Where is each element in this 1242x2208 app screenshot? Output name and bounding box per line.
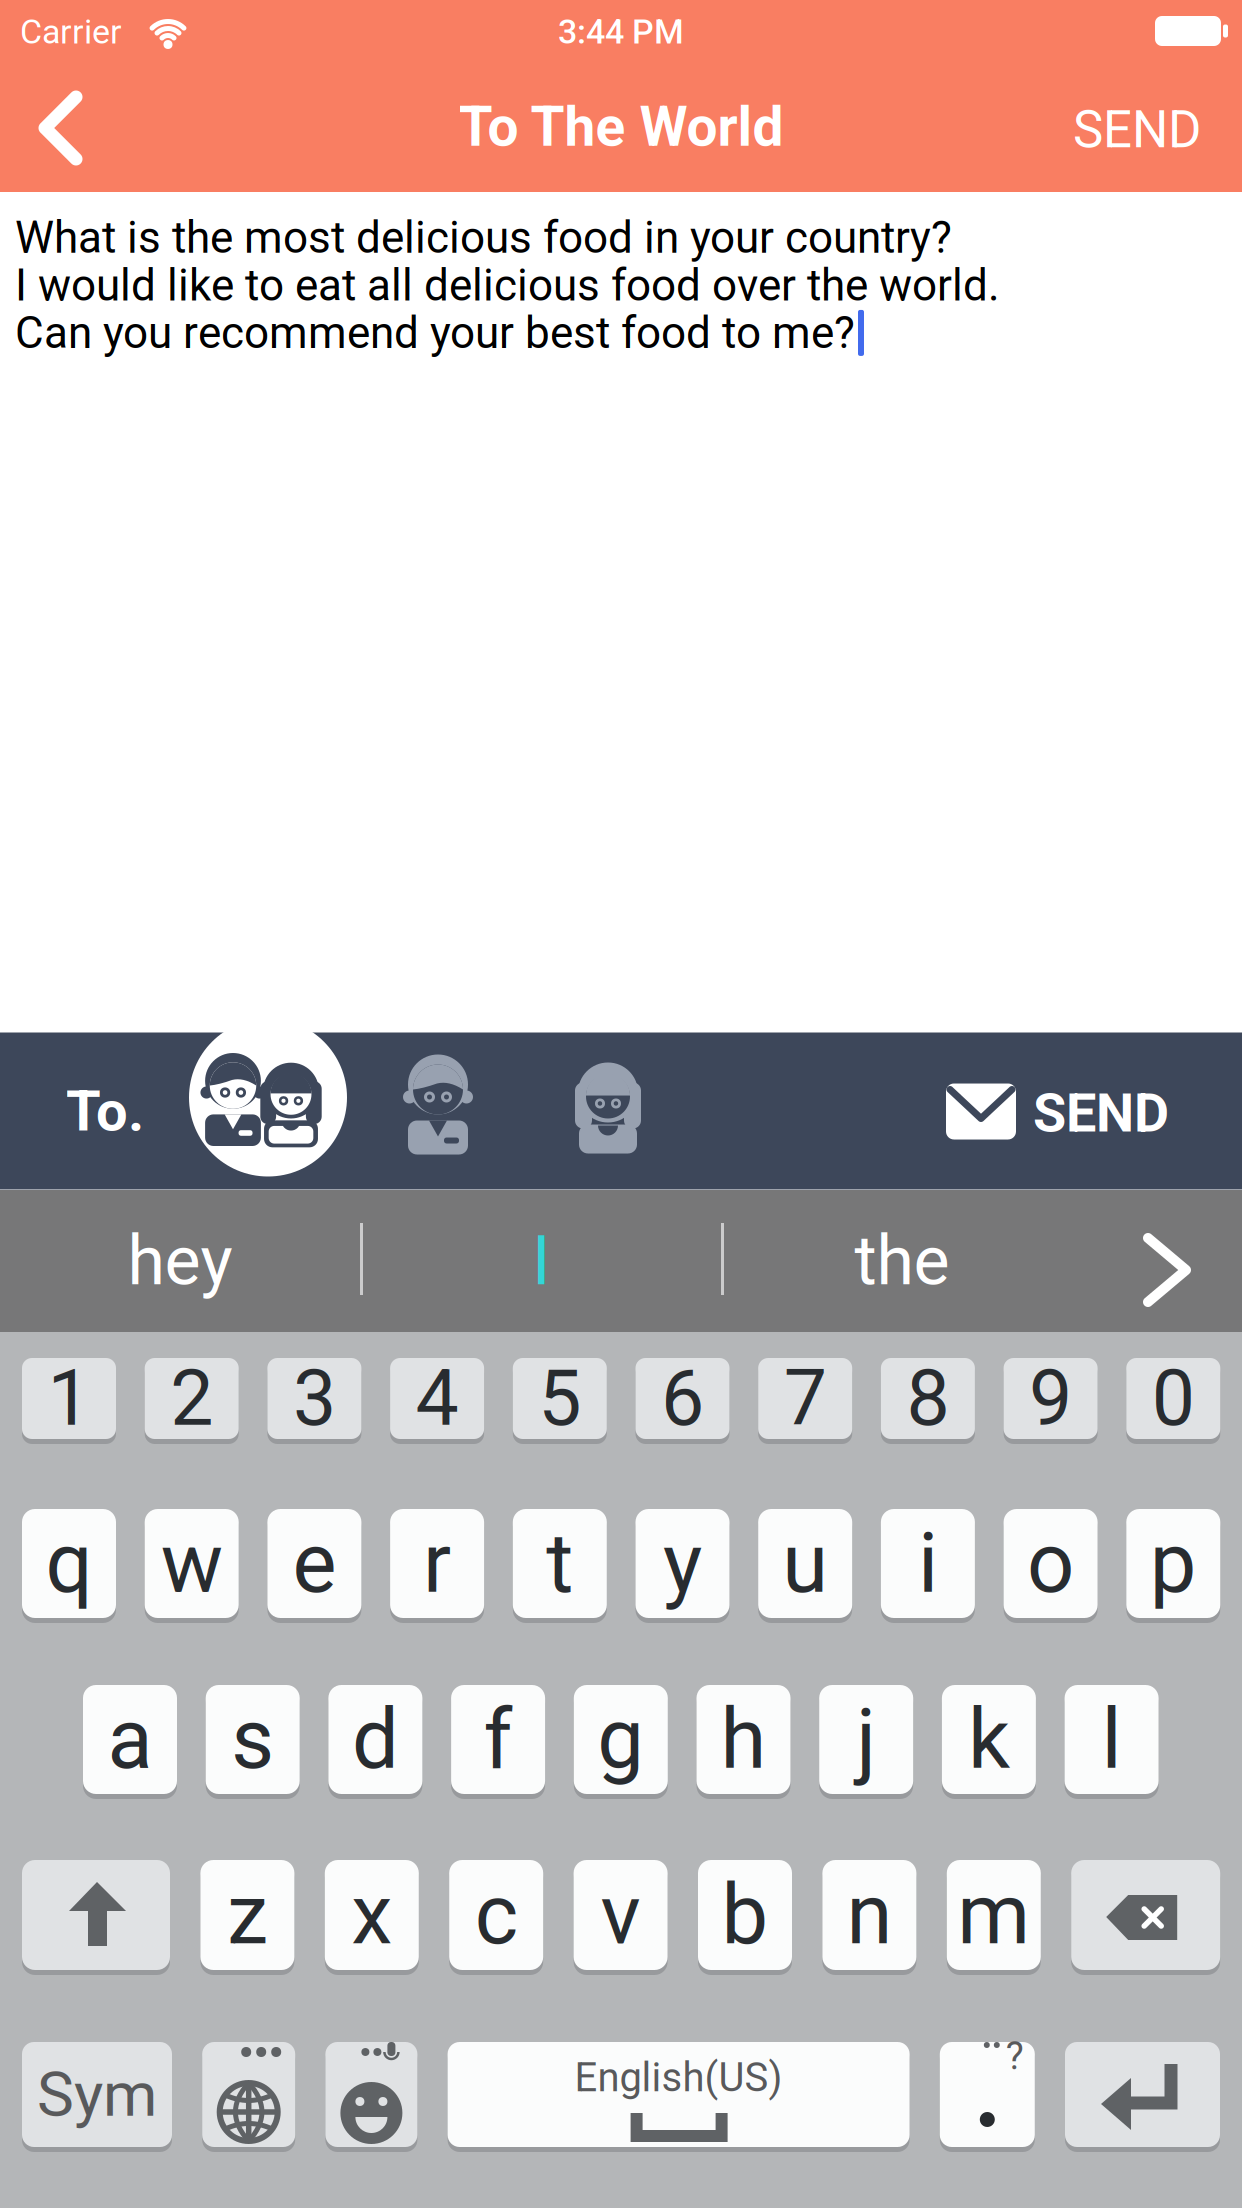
staticText: 9 xyxy=(1029,1353,1072,1444)
staticText: 2 xyxy=(170,1353,213,1444)
staticText: hey xyxy=(127,1221,232,1301)
staticText: j xyxy=(856,1691,876,1788)
staticText: s xyxy=(231,1691,274,1788)
staticText: m xyxy=(957,1866,1030,1964)
staticText: 6 xyxy=(661,1353,704,1444)
staticText: 5 xyxy=(538,1353,581,1444)
staticText: b xyxy=(721,1866,768,1964)
staticText: k xyxy=(968,1691,1010,1788)
staticText: d xyxy=(352,1691,399,1788)
staticText: What is the most delicious food in your … xyxy=(15,212,952,264)
staticText: English(US) xyxy=(575,2054,783,2101)
staticText: l xyxy=(1102,1691,1122,1788)
staticText: 4 xyxy=(416,1353,459,1444)
staticText: g xyxy=(597,1691,644,1788)
staticText: I would like to eat all delicious food o… xyxy=(15,260,1000,311)
staticText: I xyxy=(532,1221,550,1301)
staticText: h xyxy=(720,1691,766,1788)
staticText: n xyxy=(846,1866,892,1964)
staticText: u xyxy=(782,1515,828,1612)
staticText: t xyxy=(546,1515,573,1612)
staticText: Can you recommend your best food to me? xyxy=(15,307,855,359)
staticText: To The World xyxy=(458,95,783,159)
staticText: i xyxy=(918,1515,938,1612)
staticText: e xyxy=(292,1515,336,1612)
staticText: To. xyxy=(66,1078,144,1144)
staticText: the xyxy=(854,1221,949,1301)
staticText: Sym xyxy=(37,2058,157,2131)
staticText: o xyxy=(1027,1515,1074,1612)
staticText: 0 xyxy=(1152,1353,1195,1444)
staticText: 8 xyxy=(906,1353,949,1444)
staticText: r xyxy=(423,1515,451,1612)
staticText: SEND xyxy=(1073,100,1201,160)
staticText: p xyxy=(1150,1515,1197,1612)
staticText: 1 xyxy=(47,1353,90,1444)
staticText: 3:44 PM xyxy=(558,12,684,52)
staticText: q xyxy=(45,1515,92,1612)
staticText: 3 xyxy=(293,1353,336,1444)
staticText: ? xyxy=(1006,2034,1024,2078)
staticText: 7 xyxy=(784,1353,827,1444)
staticText: x xyxy=(351,1866,392,1964)
staticText: c xyxy=(475,1866,518,1964)
staticText: v xyxy=(601,1866,641,1964)
staticText: a xyxy=(107,1691,152,1788)
staticText: Carrier xyxy=(20,12,122,52)
staticText: f xyxy=(484,1691,513,1788)
staticText: w xyxy=(161,1515,223,1612)
staticText: y xyxy=(663,1515,702,1612)
staticText: SEND xyxy=(1033,1081,1169,1145)
staticText: z xyxy=(227,1866,268,1964)
